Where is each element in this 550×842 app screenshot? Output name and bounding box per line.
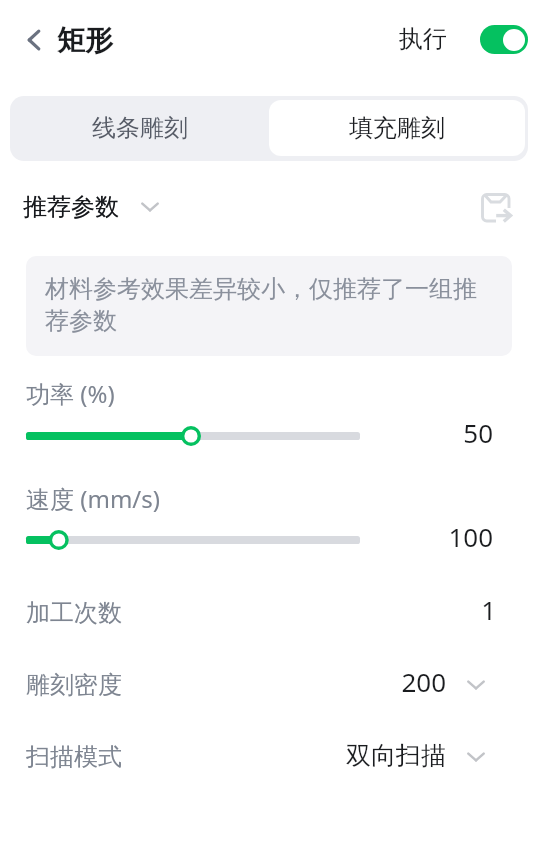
staticText: 填充雕刻 bbox=[349, 113, 445, 143]
button[interactable]: 速度 (mm/s) bbox=[14, 523, 372, 557]
staticText: 速度 (mm/s) bbox=[26, 482, 160, 515]
button[interactable]: 推荐参数 bbox=[23, 188, 159, 226]
staticText: 功率 (%) bbox=[26, 377, 115, 410]
staticText: 50 bbox=[330, 415, 493, 450]
staticText: 材料参考效果差异较小，仅推荐了一组推荐参数 bbox=[45, 274, 485, 336]
button[interactable]: 功率 (%) bbox=[14, 419, 372, 453]
button[interactable]: Export parameters bbox=[475, 187, 517, 229]
staticText: 1 bbox=[240, 592, 496, 627]
button[interactable]: 加工次数 bbox=[0, 580, 550, 648]
staticText: 雕刻密度 bbox=[26, 670, 122, 700]
staticText: 双向扫描 bbox=[240, 740, 446, 771]
staticText: 推荐参数 bbox=[23, 192, 119, 222]
staticText: 扫描模式 bbox=[26, 742, 122, 772]
button[interactable]: 线条雕刻 bbox=[10, 96, 270, 160]
button[interactable]: 雕刻密度 bbox=[0, 652, 550, 720]
staticText: 线条雕刻 bbox=[92, 113, 188, 143]
staticText: 矩形 bbox=[57, 23, 113, 58]
staticText: 推荐参数 bbox=[23, 192, 119, 222]
button[interactable]: Back bbox=[12, 18, 56, 62]
staticText: 100 bbox=[330, 519, 493, 554]
button[interactable]: 执行 bbox=[389, 15, 457, 65]
staticText: 加工次数 bbox=[26, 598, 122, 628]
staticText: 200 bbox=[240, 664, 446, 699]
button[interactable]: Execute toggle bbox=[480, 25, 528, 54]
button[interactable]: 填充雕刻 bbox=[269, 100, 525, 156]
button[interactable]: 扫描模式 bbox=[0, 724, 550, 792]
staticText: 执行 bbox=[399, 24, 447, 54]
